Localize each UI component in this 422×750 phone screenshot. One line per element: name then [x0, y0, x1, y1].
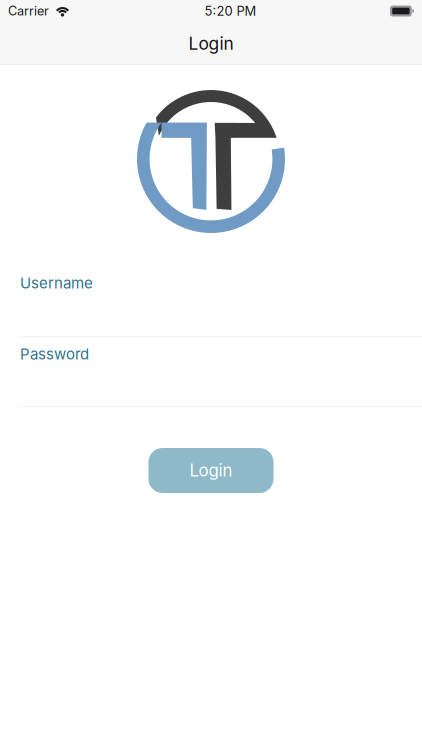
staticText: Carrier [8, 3, 49, 19]
staticText: 5:20 PM [204, 3, 256, 19]
staticText: Password [20, 345, 89, 363]
staticText: Username [20, 274, 93, 292]
staticText: Login [188, 33, 233, 54]
staticText: Login [189, 460, 232, 481]
button[interactable]: Login [148, 448, 273, 493]
